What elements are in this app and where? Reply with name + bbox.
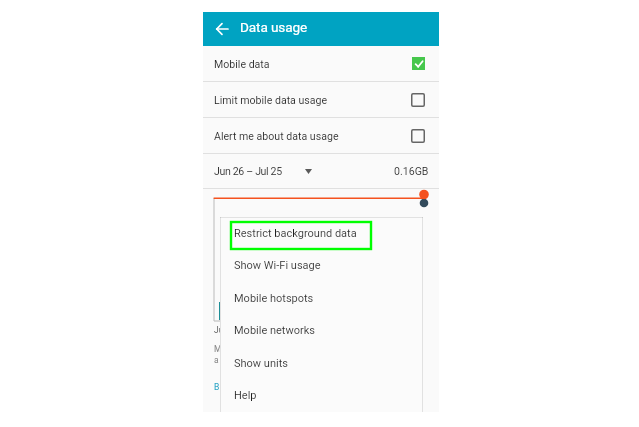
button[interactable]: Mobile hotspots	[220, 282, 423, 314]
button[interactable]: Restrict background data	[220, 217, 423, 249]
button[interactable]: Mobile data	[203, 46, 439, 81]
staticText: Mobile hotspots	[234, 292, 314, 305]
button[interactable]: Show units	[220, 347, 423, 379]
button[interactable]: Jun 26 – Jul 25	[203, 154, 439, 188]
staticText: 0.16GB	[394, 165, 429, 177]
staticText: a	[214, 355, 219, 365]
staticText: Help	[234, 389, 257, 402]
staticText: Show Wi-Fi usage	[234, 259, 321, 272]
staticText: M	[214, 344, 222, 354]
staticText: Data usage	[240, 19, 308, 35]
staticText: Show units	[234, 357, 288, 370]
staticText: Restrict background data	[234, 227, 357, 240]
staticText: Mobile data	[214, 58, 270, 70]
staticText: Ju	[214, 325, 224, 335]
button[interactable]: Alert me about data usage	[203, 118, 439, 153]
button[interactable]: Limit mobile data usage	[203, 82, 439, 117]
button[interactable]: Help	[220, 379, 423, 411]
staticText: Mobile networks	[234, 324, 315, 337]
button[interactable]: Show Wi-Fi usage	[220, 249, 423, 281]
staticText: Jun 26 – Jul 25	[214, 165, 282, 177]
staticText: Limit mobile data usage	[214, 94, 328, 106]
button[interactable]: Mobile networks	[220, 314, 423, 346]
staticText: B	[214, 382, 220, 392]
staticText: Alert me about data usage	[214, 130, 339, 142]
button[interactable]: Back	[203, 12, 241, 46]
